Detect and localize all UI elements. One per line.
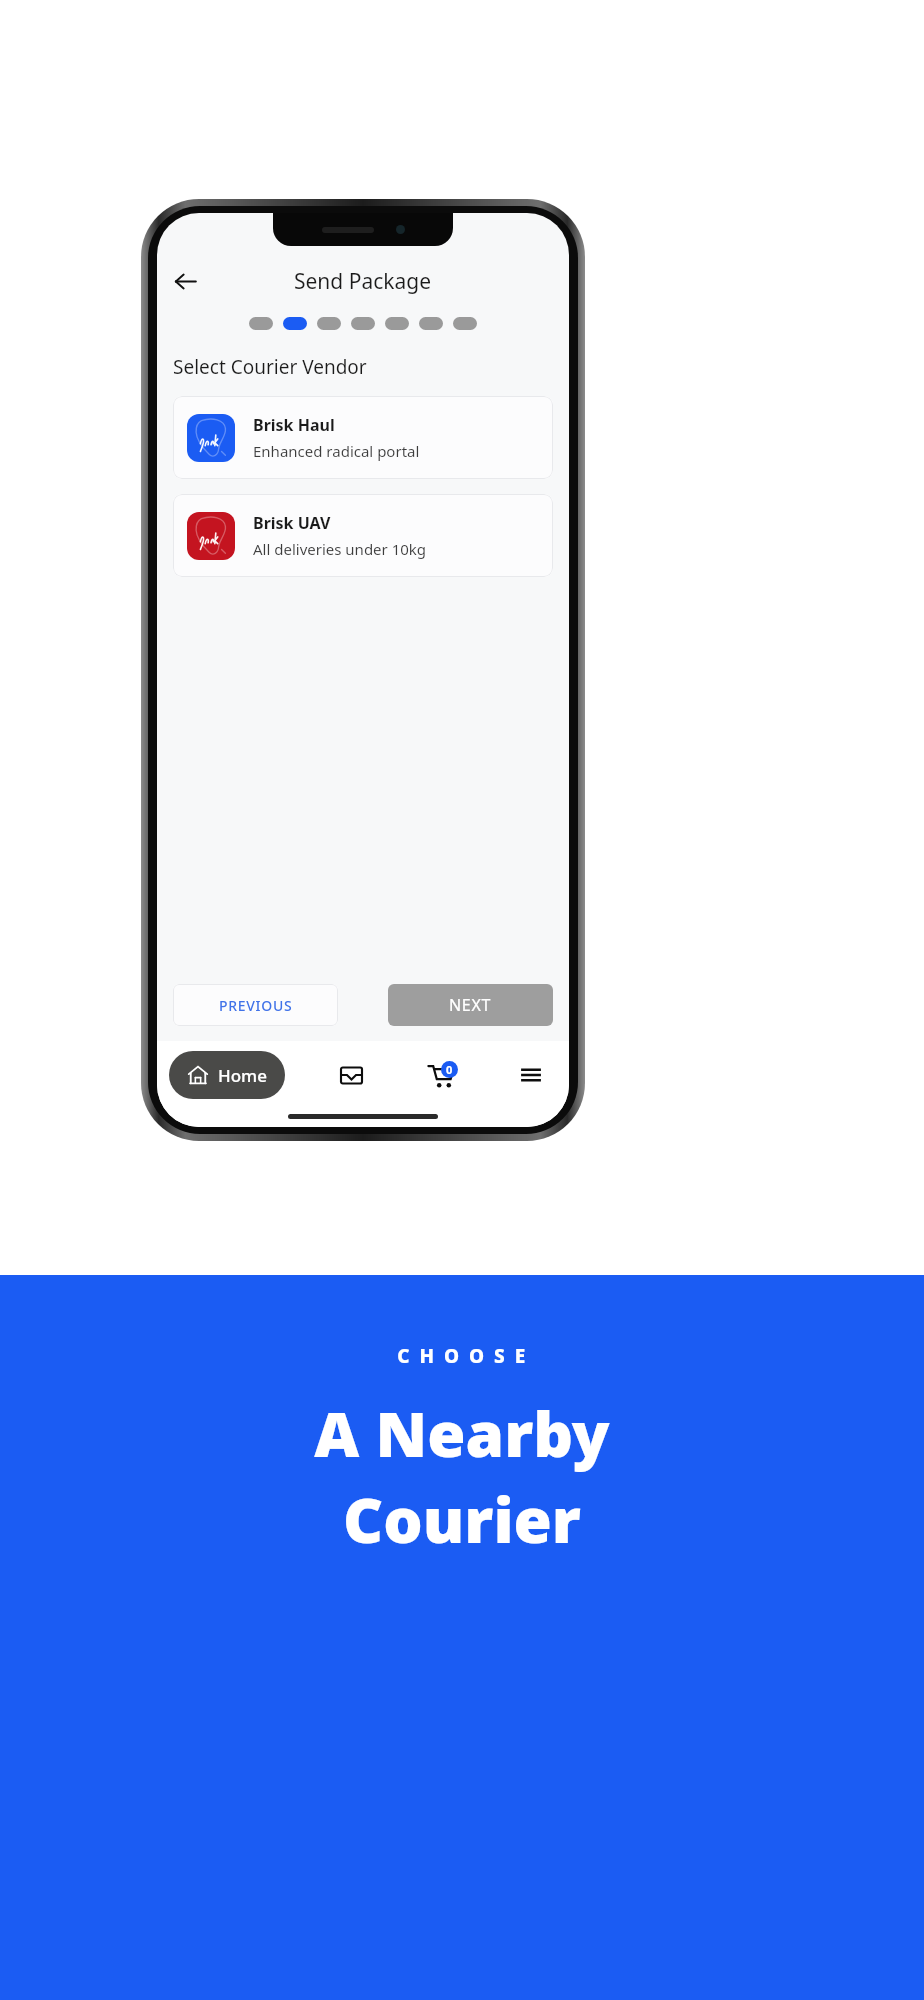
button[interactable]: PREVIOUS	[173, 984, 338, 1026]
button[interactable]: Cart, 0 items	[417, 1051, 465, 1099]
button[interactable]: Back	[163, 259, 207, 303]
staticText: C H O O S E	[397, 1343, 528, 1369]
staticText: Courier	[343, 1477, 581, 1561]
button[interactable]: Brisk UAV	[173, 494, 553, 577]
staticText: NEXT	[449, 994, 492, 1016]
staticText: Send Package	[294, 267, 432, 296]
staticText: Home	[218, 1064, 267, 1087]
button[interactable]: Brisk Haul	[173, 396, 553, 479]
button[interactable]: Step 7	[453, 317, 477, 330]
staticText: Brisk UAV	[253, 512, 331, 534]
button[interactable]: Step 2	[283, 317, 307, 330]
staticText: Select Courier Vendor	[173, 354, 367, 380]
staticText: Enhanced radical portal	[253, 441, 420, 461]
button[interactable]: Step 1	[249, 317, 273, 330]
button[interactable]: Step 4	[351, 317, 375, 330]
button[interactable]: Step 5	[385, 317, 409, 330]
button[interactable]: NEXT	[388, 984, 553, 1026]
staticText: Brisk Haul	[253, 414, 335, 436]
staticText: PREVIOUS	[219, 996, 293, 1015]
button[interactable]: Step 3	[317, 317, 341, 330]
button[interactable]: Menu	[507, 1051, 555, 1099]
staticText: 0	[446, 1062, 453, 1077]
button[interactable]: Step 6	[419, 317, 443, 330]
staticText: All deliveries under 10kg	[253, 539, 427, 559]
button[interactable]: Inbox	[327, 1051, 375, 1099]
button[interactable]: Home	[169, 1051, 285, 1099]
staticText: A Nearby	[314, 1391, 610, 1475]
